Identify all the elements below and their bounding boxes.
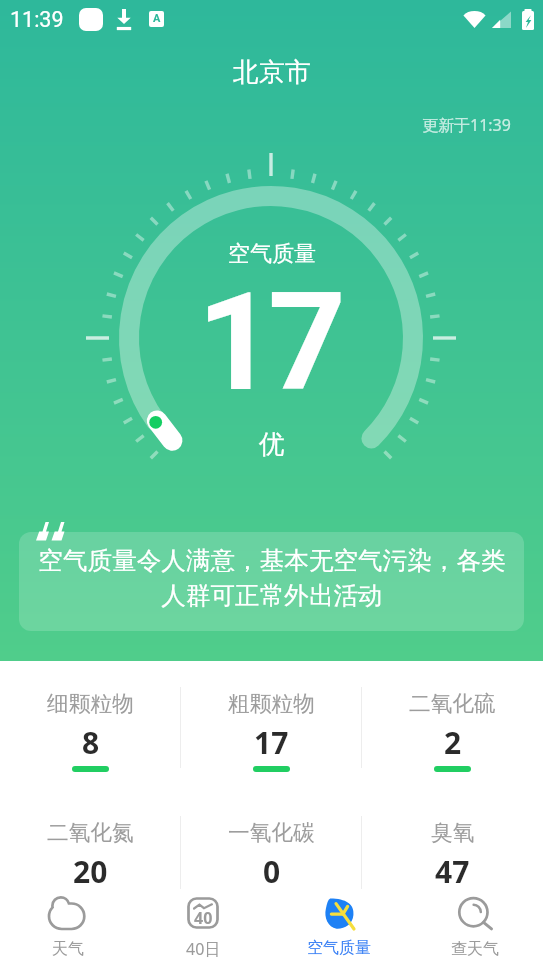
other: 40日 [187,897,219,929]
staticText: 20 [73,851,108,892]
button[interactable]: 空气质量令人满意，基本无空气污染，各类 人群可正常外出活动 [19,532,524,631]
staticText: 二氧化氮 [47,819,134,846]
button[interactable]: 细颗粒物 [0,661,181,790]
button[interactable]: 一氧化碳 [181,790,362,919]
staticText: 空气质量令人满意，基本无空气污染，各类 人群可正常外出活动 [38,545,506,611]
staticText: 17 [254,722,289,763]
button[interactable]: 40日 [135,889,271,967]
staticText: 臭氧 [431,819,475,846]
staticText: 8 [82,722,100,763]
staticText: 空气质量 [307,938,371,958]
staticText: 11:39 [10,7,64,32]
staticText: 0 [263,851,281,892]
staticText: 17 [197,263,339,422]
staticText: 40 [194,907,213,929]
button[interactable]: 天气 [0,889,135,967]
staticText: 一氧化碳 [228,819,315,846]
staticText: 更新于11:39 [422,114,511,136]
staticText: 天气 [52,939,84,959]
button[interactable]: 二氧化氮 [0,790,181,919]
staticText: 粗颗粒物 [228,690,315,717]
button[interactable]: 粗颗粒物 [181,661,362,790]
staticText: 空气质量 [228,240,316,268]
other: 空气质量 [325,898,354,929]
staticText: 2 [444,722,462,763]
staticText: 优 [259,428,285,461]
staticText: 北京市 [233,56,311,89]
other: 查天气 [458,897,493,930]
staticText: 47 [435,851,470,892]
button[interactable]: 空气质量 [271,889,407,967]
staticText: 查天气 [451,939,499,959]
button[interactable]: 二氧化硫 [362,661,543,790]
staticText: A [153,12,161,25]
staticText: 40日 [186,938,221,960]
other: 天气 [49,897,86,930]
staticText: 二氧化硫 [409,690,496,717]
button[interactable]: 查天气 [407,889,543,967]
staticText: 细颗粒物 [47,690,134,717]
button[interactable]: 臭氧 [362,790,543,919]
